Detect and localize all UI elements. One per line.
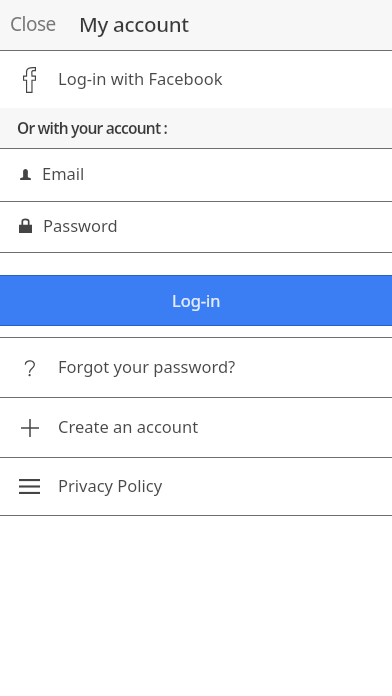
staticText: Password (43, 214, 118, 236)
button[interactable]: Create an account (0, 398, 392, 457)
button[interactable]: Password (0, 202, 392, 252)
button[interactable]: Email (0, 149, 392, 201)
button[interactable]: Log in with Facebook (0, 51, 392, 108)
button[interactable]: Log-in (0, 275, 392, 326)
staticText: Privacy Policy (58, 474, 163, 496)
staticText: Close (10, 11, 56, 37)
staticText: Log-in with Facebook (58, 67, 223, 89)
staticText: Log-in (172, 289, 221, 311)
staticText: Or with your account : (17, 117, 168, 138)
button[interactable]: Forgot your password (0, 338, 392, 397)
button[interactable]: Close (0, 0, 68, 50)
staticText: Create an account (58, 415, 199, 437)
button[interactable]: Privacy Policy (0, 458, 392, 515)
staticText: Email (42, 162, 85, 184)
staticText: Forgot your password? (58, 355, 236, 377)
staticText: My account (79, 10, 189, 38)
